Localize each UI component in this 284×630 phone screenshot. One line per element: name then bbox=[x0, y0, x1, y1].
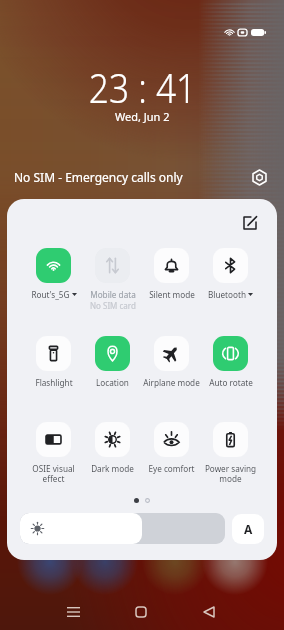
button[interactable]: Airplane mode bbox=[142, 336, 201, 388]
staticText: No SIM - Emergency calls only bbox=[14, 169, 183, 185]
staticText: Airplane mode bbox=[143, 377, 200, 388]
button[interactable]: Home bbox=[126, 597, 156, 627]
staticText: Dark mode bbox=[91, 463, 134, 474]
button[interactable]: Dark mode bbox=[83, 422, 142, 474]
staticText: Rout's_5G bbox=[31, 289, 70, 300]
button[interactable]: Brightness bbox=[20, 513, 225, 544]
staticText: Wed, Jun 2 bbox=[115, 109, 170, 124]
staticText: Mobile data bbox=[90, 289, 136, 300]
staticText: 23 : 41 bbox=[89, 59, 196, 115]
staticText: No SIM card bbox=[90, 300, 136, 311]
button[interactable]: Flashlight bbox=[24, 336, 83, 388]
staticText: Auto rotate bbox=[209, 377, 253, 388]
button[interactable]: Recent apps bbox=[58, 597, 88, 627]
button[interactable]: Settings bbox=[248, 166, 270, 188]
button[interactable]: Rout's_5G bbox=[24, 248, 83, 300]
staticText: Eye comfort bbox=[148, 463, 195, 474]
button[interactable]: OSIE visual effect bbox=[24, 422, 83, 484]
button[interactable]: Bluetooth bbox=[201, 248, 260, 300]
button[interactable]: Edit tiles bbox=[239, 212, 261, 234]
button[interactable]: Location bbox=[83, 336, 142, 388]
staticText: A bbox=[244, 521, 253, 537]
button[interactable]: Mobile data bbox=[83, 248, 142, 311]
button[interactable]: Auto rotate bbox=[201, 336, 260, 388]
button[interactable]: A bbox=[232, 514, 264, 544]
staticText: Power saving mode bbox=[201, 463, 260, 484]
staticText: Silent mode bbox=[149, 289, 195, 300]
staticText: Bluetooth bbox=[208, 289, 246, 300]
button[interactable]: Power saving mode bbox=[201, 422, 260, 484]
staticText: OSIE visual effect bbox=[24, 463, 83, 484]
staticText: Flashlight bbox=[35, 377, 73, 388]
button[interactable]: Silent mode bbox=[142, 248, 201, 300]
button[interactable]: Back bbox=[194, 597, 224, 627]
staticText: Location bbox=[96, 377, 129, 388]
button[interactable]: Eye comfort bbox=[142, 422, 201, 474]
